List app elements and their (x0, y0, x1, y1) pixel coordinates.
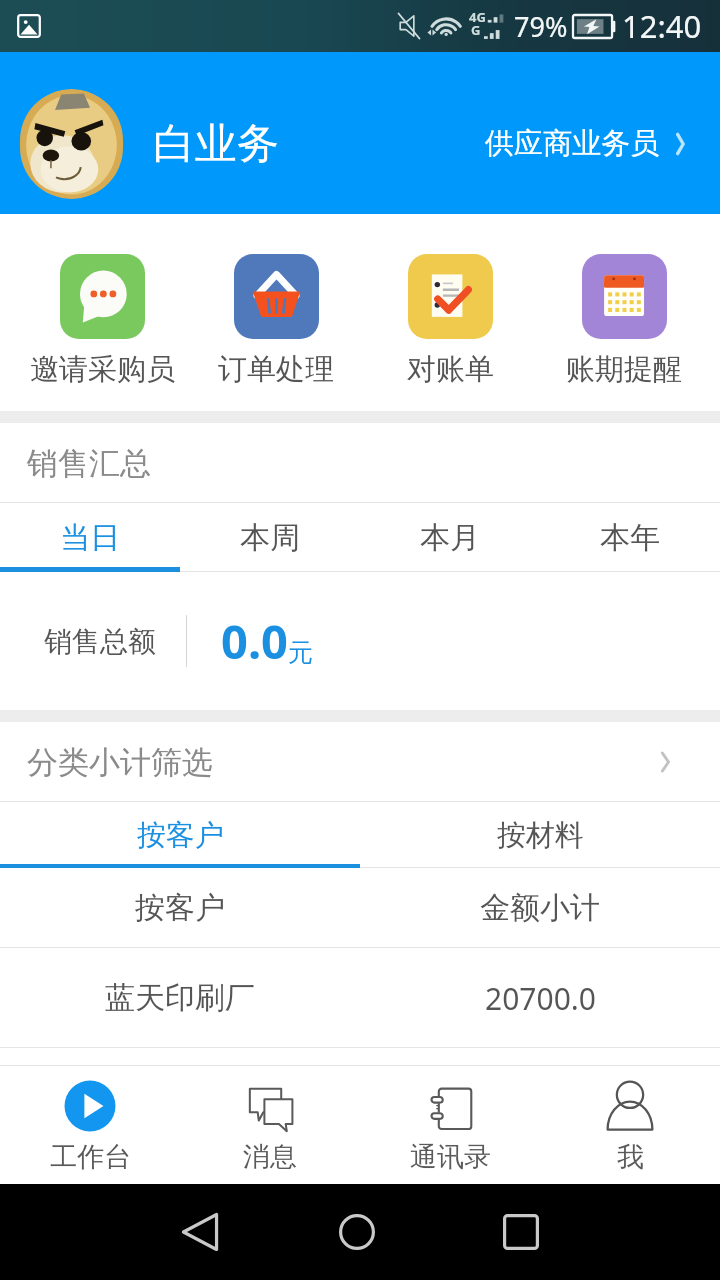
other: Home (339, 1214, 375, 1250)
staticText: 供应商业务员 (485, 125, 659, 162)
staticText: 79% (514, 8, 568, 45)
staticText: 按客户 (137, 817, 224, 854)
staticText: 本周 (240, 519, 300, 557)
button[interactable]: 本年 (540, 503, 720, 572)
button[interactable]: 蓝天印刷厂 (0, 948, 720, 1048)
button[interactable]: 邀请采购员 (15, 254, 189, 388)
staticText: 通讯录 (410, 1140, 491, 1174)
button[interactable]: 我 (540, 1065, 720, 1184)
staticText: 消息 (243, 1140, 297, 1174)
staticText: 金额小计 (480, 889, 600, 927)
button[interactable]: 消息 (180, 1065, 360, 1184)
other: Back (182, 1213, 218, 1251)
staticText: 0.0 (221, 609, 288, 673)
button[interactable]: 本月 (360, 503, 540, 572)
staticText: 4G (469, 8, 486, 26)
staticText: 12:40 (622, 5, 702, 47)
other: Filter (654, 747, 676, 777)
other: Screenshot (14, 11, 44, 41)
staticText: 白业务 (153, 118, 279, 171)
button[interactable]: 订单处理 (189, 254, 363, 388)
staticText: 对账单 (407, 351, 494, 388)
staticText: 分类小计筛选 (27, 743, 213, 782)
staticText: 蓝天印刷厂 (105, 979, 255, 1017)
staticText: 邀请采购员 (30, 351, 175, 388)
staticText: 当日 (60, 519, 120, 557)
button[interactable]: 对账单 (363, 254, 537, 388)
staticText: 订单处理 (218, 351, 334, 388)
button[interactable]: 供应商业务员 (485, 115, 690, 172)
button[interactable]: 按材料 (360, 802, 720, 868)
staticText: 销售总额 (44, 624, 156, 659)
button[interactable]: 工作台 (0, 1065, 180, 1184)
staticText: 元 (288, 637, 313, 668)
button[interactable]: 分类小计筛选 (0, 722, 720, 802)
button[interactable]: 账期提醒 (537, 254, 711, 388)
staticText: 本年 (600, 519, 660, 557)
staticText: 工作台 (50, 1140, 131, 1174)
staticText: 账期提醒 (566, 351, 682, 388)
staticText: 按客户 (135, 889, 225, 927)
staticText: 我 (617, 1140, 644, 1174)
button[interactable]: 按客户 (0, 802, 360, 868)
staticText: G (471, 21, 481, 39)
staticText: 销售汇总 (27, 444, 151, 483)
button[interactable]: 本周 (180, 503, 360, 572)
staticText: 按材料 (497, 817, 584, 854)
button[interactable]: 当日 (0, 503, 180, 572)
other: Recents (503, 1214, 539, 1250)
staticText: 本月 (420, 519, 480, 557)
staticText: 20700.0 (485, 978, 596, 1019)
button[interactable]: 通讯录 (360, 1065, 540, 1184)
